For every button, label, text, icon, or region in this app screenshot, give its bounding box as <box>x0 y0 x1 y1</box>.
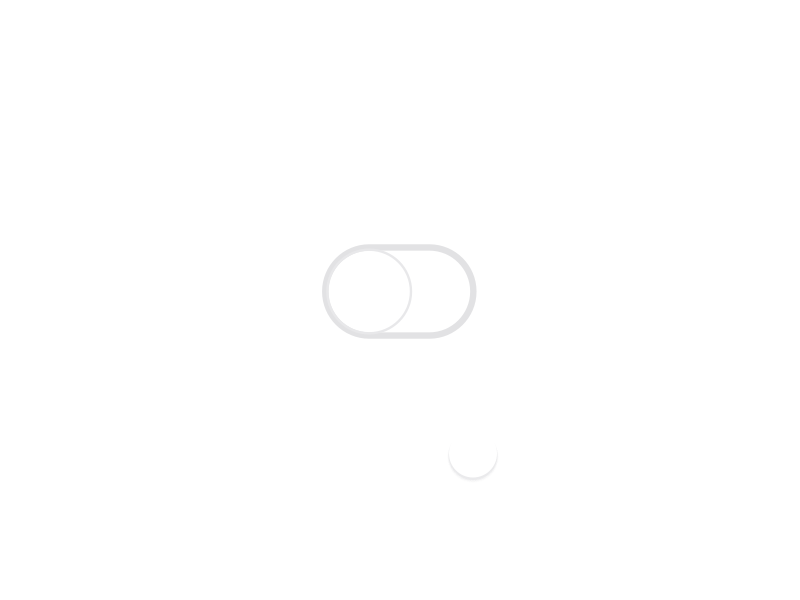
button[interactable]: Thumb <box>441 421 505 485</box>
button[interactable]: Toggle switch, off <box>314 236 485 347</box>
